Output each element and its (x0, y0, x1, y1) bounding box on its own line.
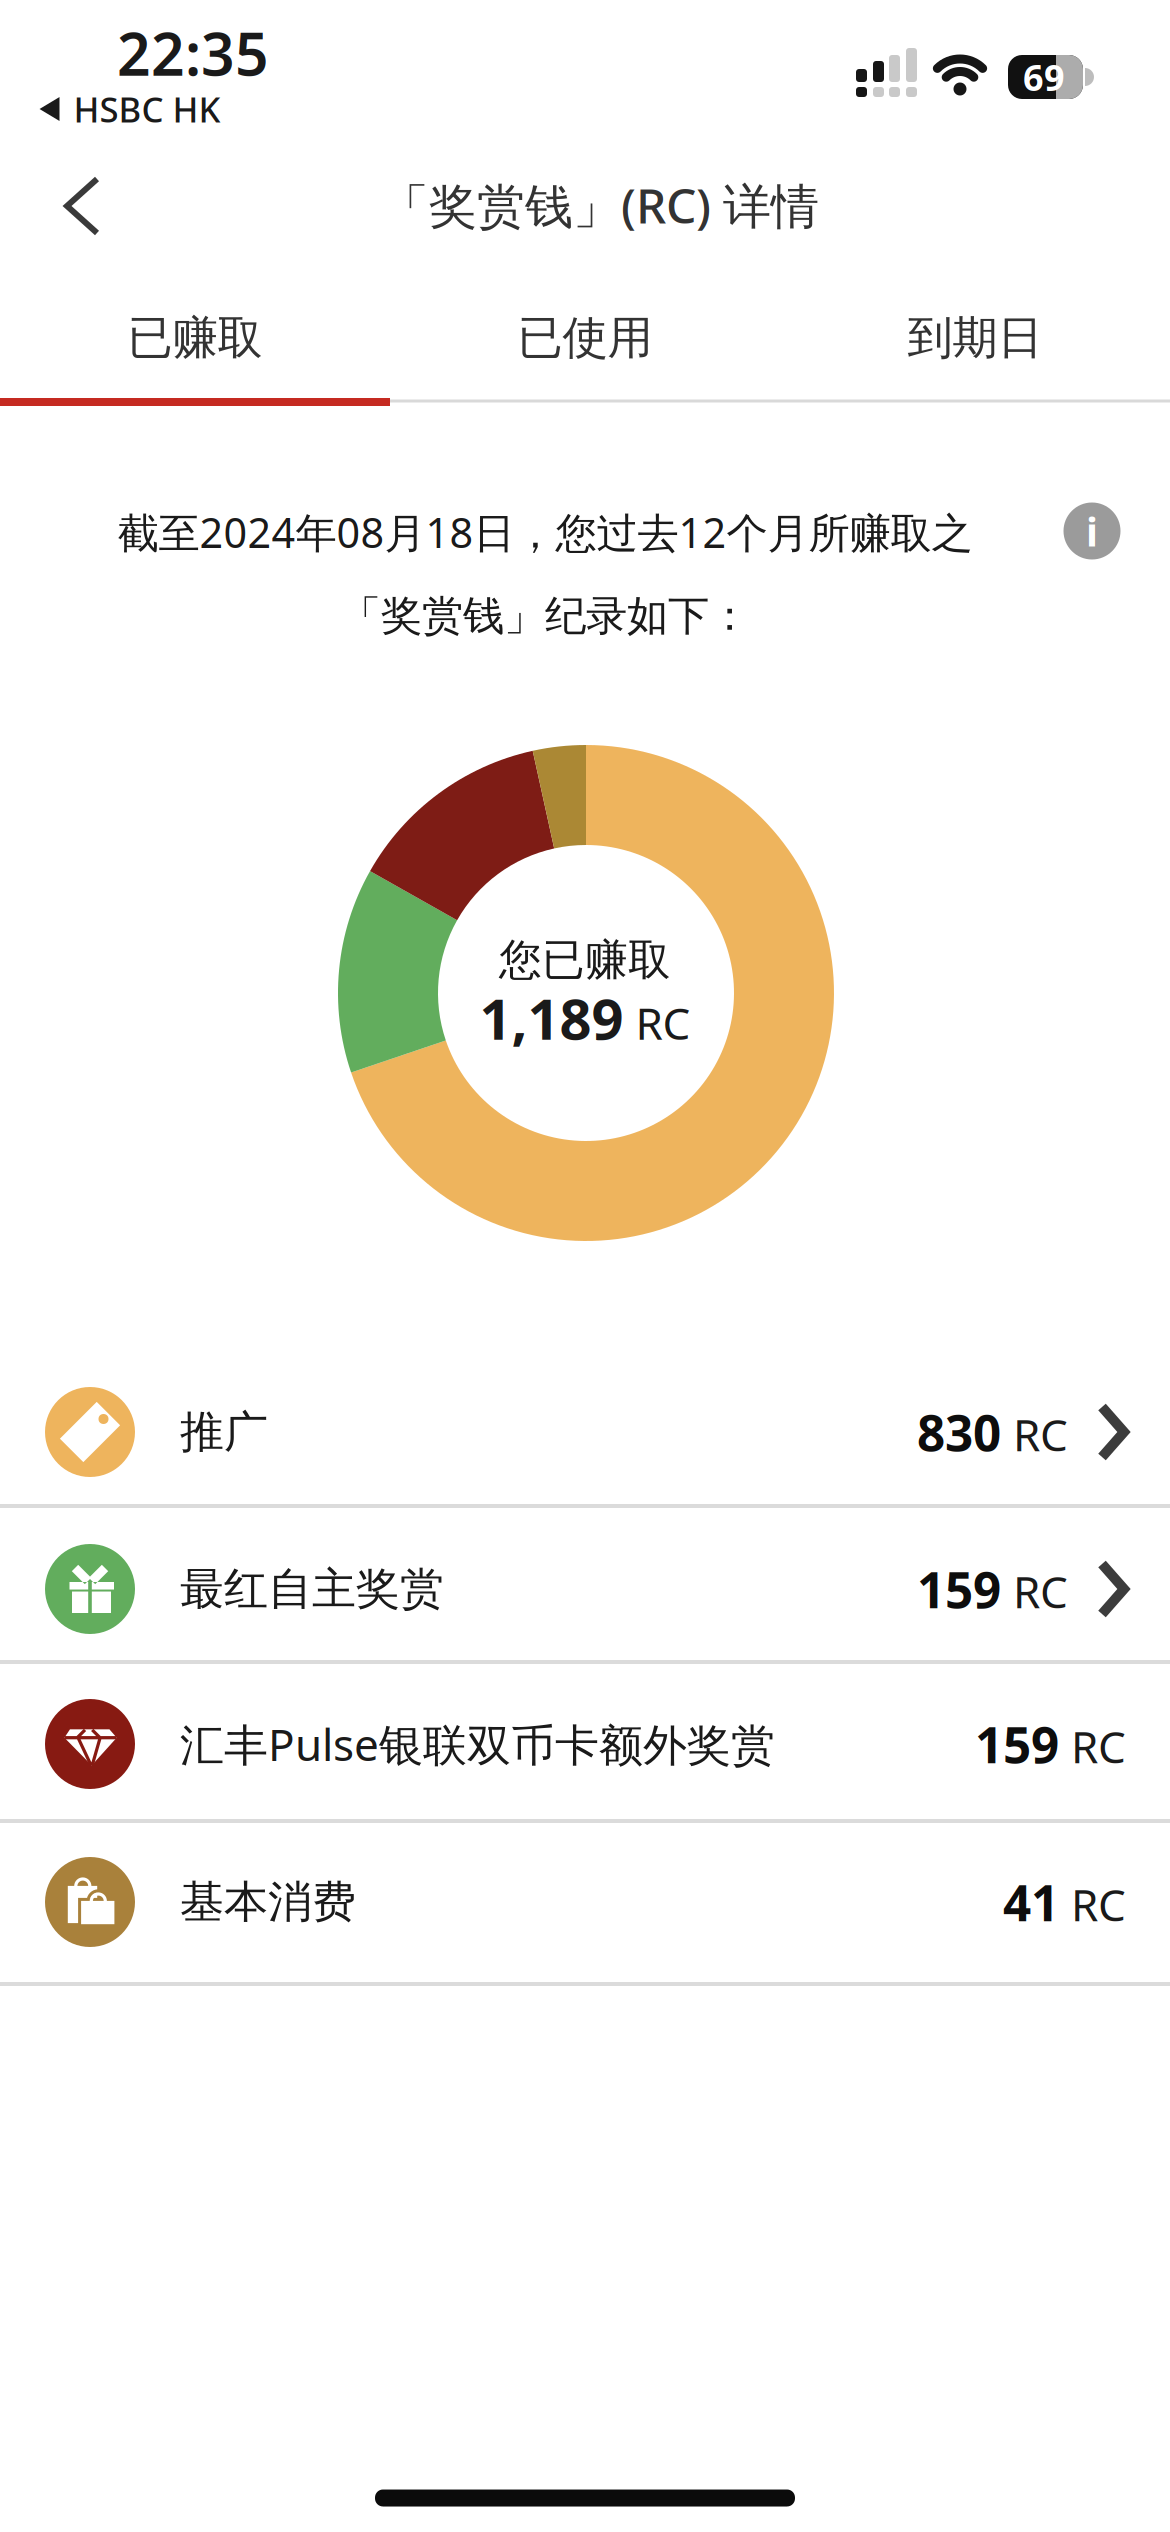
button[interactable]: 最红自主奖赏 (0, 1511, 1170, 1667)
staticText: 到期日 (907, 310, 1042, 366)
staticText: RC (1013, 1562, 1068, 1620)
staticText: 69 (1023, 53, 1065, 101)
staticText: HSBC HK (73, 86, 220, 132)
staticText: 「奖赏钱」纪录如下： (340, 591, 750, 641)
staticText: 830 (917, 1399, 1001, 1465)
button[interactable]: 推广 (0, 1354, 1170, 1510)
staticText: 「奖赏钱」(RC) 详情 (381, 173, 819, 237)
button[interactable]: i (1063, 502, 1120, 559)
staticText: 已赚取 (127, 310, 262, 366)
staticText: RC (1013, 1405, 1068, 1463)
staticText: 已使用 (517, 310, 652, 366)
staticText: RC (1071, 1875, 1126, 1933)
staticText: 22:35 (117, 14, 269, 92)
staticText: 汇丰Pulse银联双币卡额外奖赏 (180, 1715, 775, 1773)
staticText: 最红自主奖赏 (180, 1562, 444, 1616)
staticText: 1,189 (479, 981, 623, 1055)
staticText: 您已赚取 (499, 934, 671, 986)
staticText: 基本消费 (180, 1875, 356, 1929)
staticText: 159 (975, 1711, 1059, 1777)
staticText: 159 (917, 1556, 1001, 1622)
button[interactable]: 到期日 (780, 293, 1170, 383)
staticText: 截至2024年08月18日，您过去12个月所赚取之 (117, 505, 972, 559)
staticText: 推广 (180, 1405, 268, 1459)
staticText: 41 (1003, 1869, 1059, 1935)
button[interactable]: 已使用 (390, 293, 780, 383)
button[interactable]: 已赚取 (0, 293, 390, 383)
staticText: RC (635, 993, 690, 1052)
button[interactable] (63, 176, 101, 236)
staticText: i (1086, 504, 1098, 557)
staticText: RC (1071, 1717, 1126, 1775)
